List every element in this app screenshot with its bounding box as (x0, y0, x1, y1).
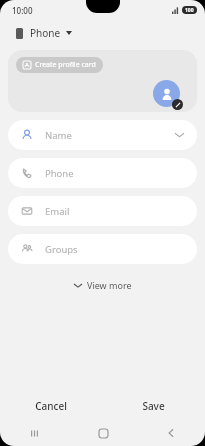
staticText: Save (142, 399, 165, 413)
button[interactable]: Groups (8, 234, 197, 264)
staticText: 100 (185, 7, 194, 14)
button[interactable]: Save (102, 392, 205, 420)
staticText: Phone (45, 167, 74, 180)
button[interactable]: Recents (0, 420, 69, 446)
button[interactable]: Back (137, 420, 205, 446)
staticText: Phone (30, 26, 61, 40)
button[interactable]: Edit profile photo (153, 80, 183, 110)
button[interactable]: View more (66, 276, 140, 294)
button[interactable]: Create profile card (16, 57, 103, 73)
staticText: Name (45, 129, 72, 142)
button[interactable]: Cancel (0, 392, 102, 420)
staticText: 10:00 (12, 5, 33, 16)
button[interactable]: Home (69, 420, 137, 446)
staticText: Create profile card (35, 60, 96, 70)
button[interactable]: Email (8, 196, 197, 226)
staticText: Email (45, 205, 70, 218)
button[interactable]: Phone (8, 158, 197, 188)
staticText: Cancel (35, 399, 67, 413)
button[interactable]: Name (8, 120, 197, 150)
staticText: View more (87, 279, 132, 291)
staticText: Groups (45, 243, 78, 256)
button[interactable]: Phone (14, 24, 74, 42)
